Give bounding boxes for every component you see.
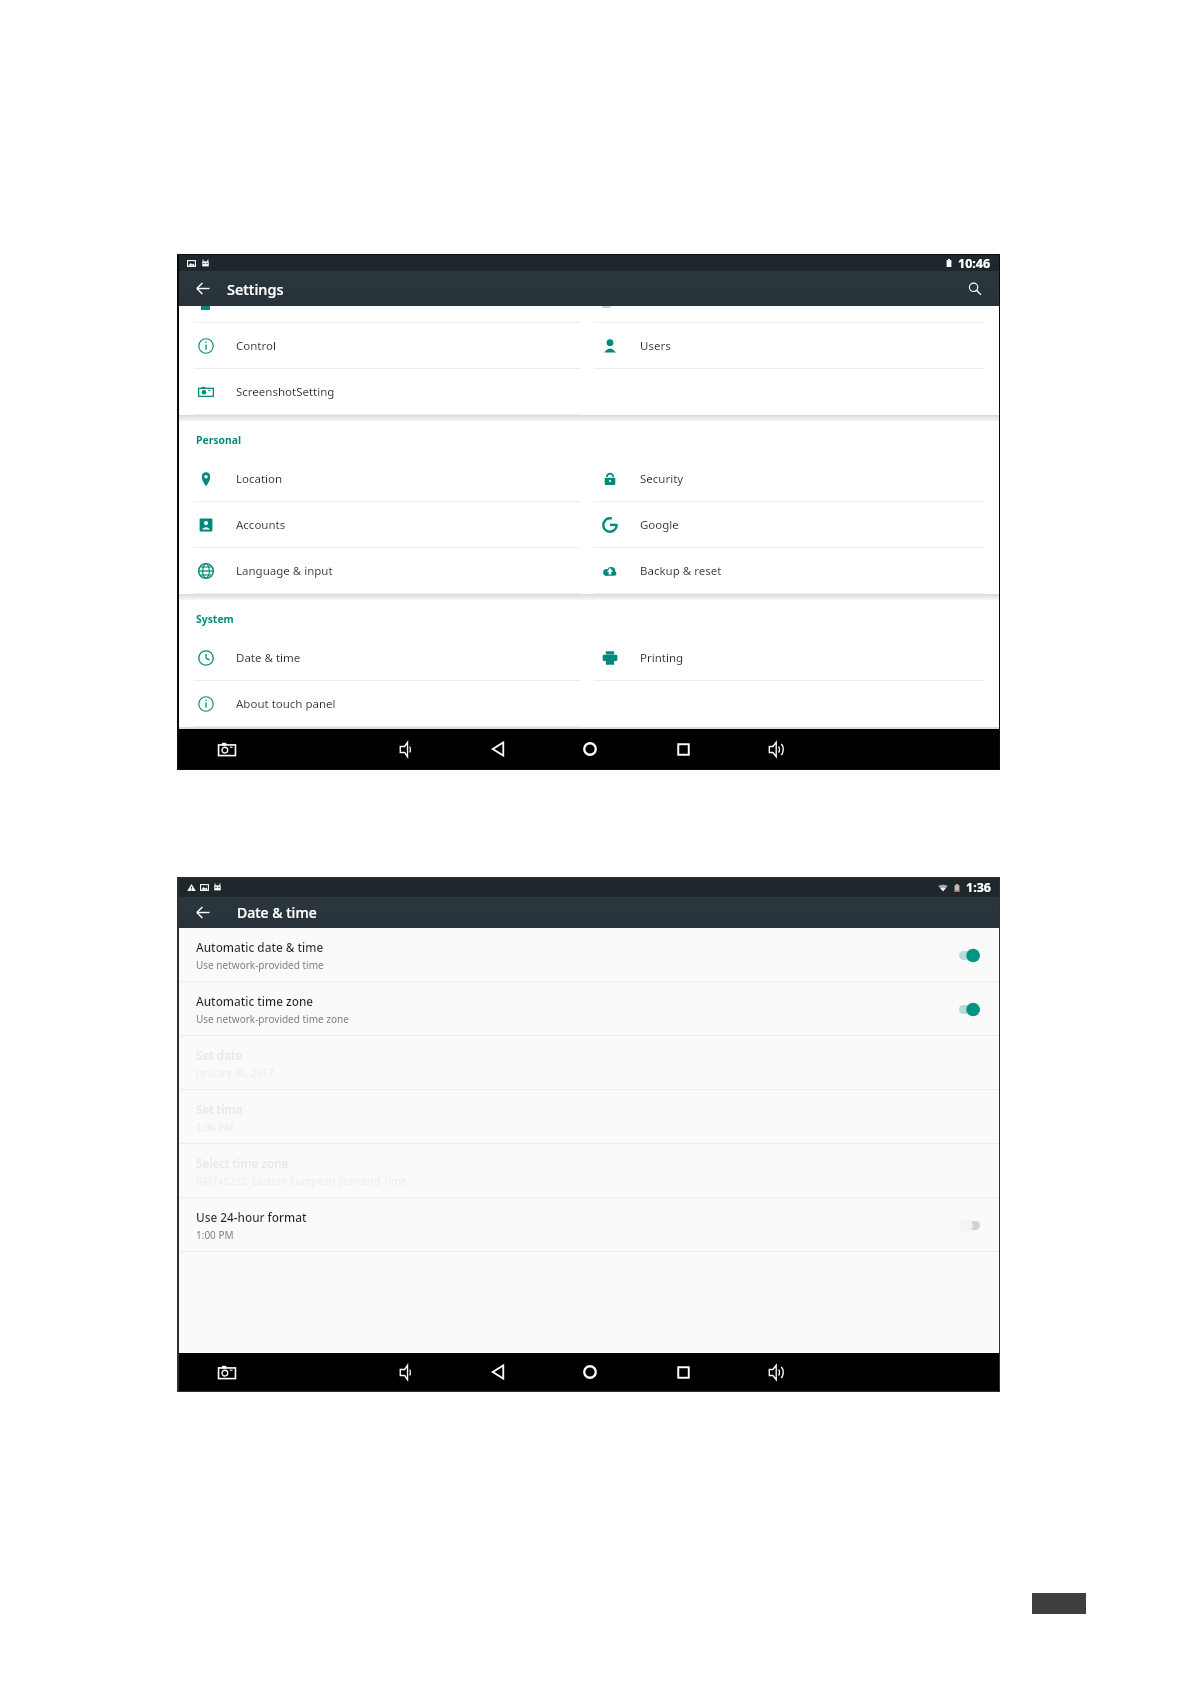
button[interactable]: Location: [179, 456, 583, 502]
button[interactable]: Security: [583, 456, 999, 502]
button[interactable]: Automatic date & time: [179, 928, 999, 982]
button[interactable]: Language & input: [179, 548, 583, 594]
staticText: Accounts: [236, 517, 286, 533]
button[interactable]: Backup & reset: [583, 548, 999, 594]
staticText: 1:36 PM: [196, 1120, 234, 1134]
button[interactable]: On: [959, 948, 980, 963]
button[interactable]: Google: [583, 502, 999, 548]
staticText: Automatic time zone: [196, 993, 314, 1009]
staticText: ScreenshotSetting: [236, 384, 335, 400]
staticText: Use 24-hour format: [196, 1209, 307, 1225]
button[interactable]: About touch panel: [179, 681, 583, 727]
staticText: Set time: [196, 1101, 243, 1117]
button[interactable]: Screenshot: [203, 1353, 251, 1391]
staticText: Settings: [227, 279, 284, 299]
staticText: Use network-provided time zone: [196, 1012, 349, 1026]
staticText: Set date: [196, 1047, 243, 1063]
staticText: Location: [236, 471, 283, 487]
button[interactable]: Off: [959, 1218, 980, 1233]
button[interactable]: On: [959, 1002, 980, 1017]
button[interactable]: Search: [951, 271, 999, 306]
staticText: Users: [640, 338, 671, 354]
staticText: Date & time: [237, 903, 317, 922]
staticText: Use network-provided time: [196, 958, 324, 972]
button[interactable]: Recent apps: [659, 1353, 707, 1391]
staticText: 1:00 PM: [196, 1228, 234, 1242]
button[interactable]: Accounts: [179, 502, 583, 548]
staticText: Backup & reset: [640, 563, 722, 579]
staticText: Language & input: [236, 563, 333, 579]
staticText: GMT+02:00 Eastern European Standard Time: [196, 1174, 407, 1188]
staticText: About touch panel: [236, 696, 336, 712]
staticText: Select time zone: [196, 1155, 289, 1171]
staticText: 10:46: [958, 255, 991, 271]
button[interactable]: Navigate up: [179, 897, 237, 928]
button[interactable]: Volume up: [752, 1353, 800, 1391]
button[interactable]: Home: [566, 729, 614, 769]
button[interactable]: ScreenshotSetting: [179, 369, 583, 415]
button[interactable]: Users: [583, 323, 999, 369]
staticText: System: [196, 612, 234, 626]
staticText: Date & time: [236, 650, 301, 666]
staticText: Control: [236, 338, 276, 354]
staticText: Automatic date & time: [196, 939, 324, 955]
button[interactable]: Navigate up: [179, 271, 227, 306]
button[interactable]: Home: [566, 1353, 614, 1391]
button[interactable]: Recent apps: [659, 729, 707, 769]
staticText: Printing: [640, 650, 684, 666]
staticText: January 30, 2017: [196, 1066, 274, 1080]
button[interactable]: Back: [474, 1353, 522, 1391]
staticText: Security: [640, 471, 684, 487]
button[interactable]: Back: [474, 729, 522, 769]
button[interactable]: Use 24-hour format: [179, 1198, 999, 1252]
staticText: Personal: [196, 433, 242, 447]
button[interactable]: Screenshot: [203, 729, 251, 769]
staticText: 1:36: [966, 879, 991, 896]
staticText: Google: [640, 517, 679, 533]
button[interactable]: Date & time: [179, 635, 583, 681]
button[interactable]: Automatic time zone: [179, 982, 999, 1036]
button[interactable]: Printing: [583, 635, 999, 681]
button[interactable]: Volume down: [382, 1353, 430, 1391]
button[interactable]: Control: [179, 323, 583, 369]
button[interactable]: Volume up: [752, 729, 800, 769]
button[interactable]: Volume down: [382, 729, 430, 769]
